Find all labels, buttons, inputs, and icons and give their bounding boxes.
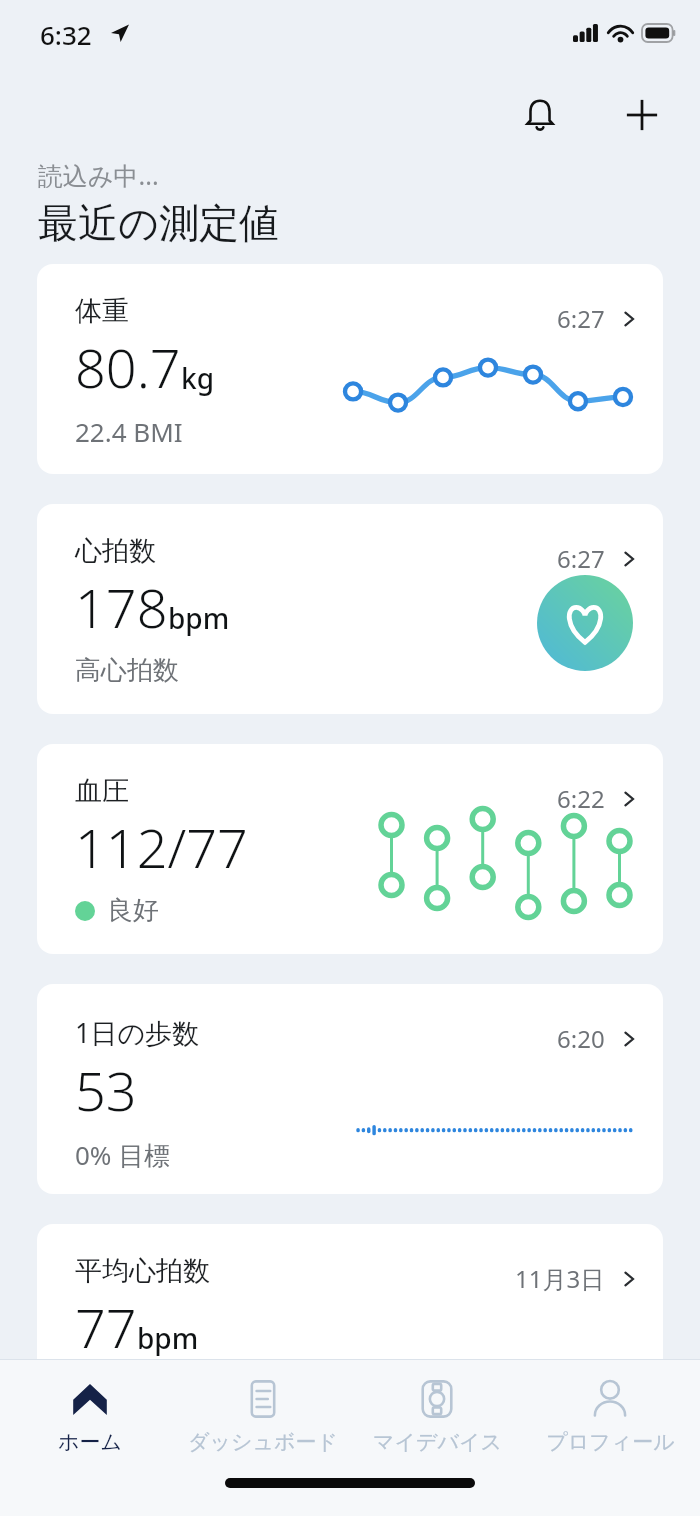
button[interactable]: 6:27 xyxy=(37,504,663,714)
staticText: bpm xyxy=(137,1319,199,1357)
staticText: 6:27 xyxy=(557,302,605,335)
staticText: 6:20 xyxy=(557,1022,605,1055)
button[interactable]: プロフィール xyxy=(526,1370,694,1461)
staticText: ダッシュボード xyxy=(188,1429,338,1455)
staticText: 22.4 BMI xyxy=(75,414,183,449)
staticText: ホーム xyxy=(58,1429,122,1455)
staticText: 80.7 xyxy=(75,330,181,404)
staticText: 心拍数 xyxy=(75,534,156,568)
button[interactable]: Add measurement xyxy=(610,83,674,147)
button[interactable]: マイデバイス xyxy=(353,1370,521,1461)
staticText: 112/77 xyxy=(75,810,248,884)
staticText: 178 xyxy=(75,570,168,644)
staticText: マイデバイス xyxy=(373,1429,502,1455)
staticText: 血圧 xyxy=(75,774,129,808)
staticText: 最近の測定値 xyxy=(38,198,279,248)
staticText: 11月3日 xyxy=(515,1262,605,1295)
button[interactable]: ホーム xyxy=(6,1370,174,1461)
staticText: 良好 xyxy=(107,894,159,927)
staticText: 体重 xyxy=(75,294,129,328)
staticText: bpm xyxy=(168,599,230,637)
staticText: 平均心拍数 xyxy=(75,1254,210,1288)
button[interactable]: 11月3日 xyxy=(37,1224,663,1434)
button[interactable]: 6:22 xyxy=(37,744,663,954)
button[interactable]: 6:20 xyxy=(37,984,663,1194)
staticText: 6:32 xyxy=(40,17,92,52)
staticText: 77 xyxy=(75,1290,137,1364)
staticText: 6:22 xyxy=(557,782,605,815)
staticText: kg xyxy=(181,359,215,397)
staticText: プロフィール xyxy=(546,1429,675,1455)
staticText: 読込み中... xyxy=(38,158,159,192)
button[interactable]: ダッシュボード xyxy=(179,1370,347,1461)
staticText: 0% 目標 xyxy=(75,1137,171,1173)
button[interactable]: Notifications xyxy=(508,83,572,147)
staticText: 1日の歩数 xyxy=(75,1014,200,1051)
staticText: 高心拍数 xyxy=(75,654,179,687)
staticText: 6:27 xyxy=(557,542,605,575)
staticText: 53 xyxy=(75,1053,137,1127)
button[interactable]: 6:27 xyxy=(37,264,663,474)
